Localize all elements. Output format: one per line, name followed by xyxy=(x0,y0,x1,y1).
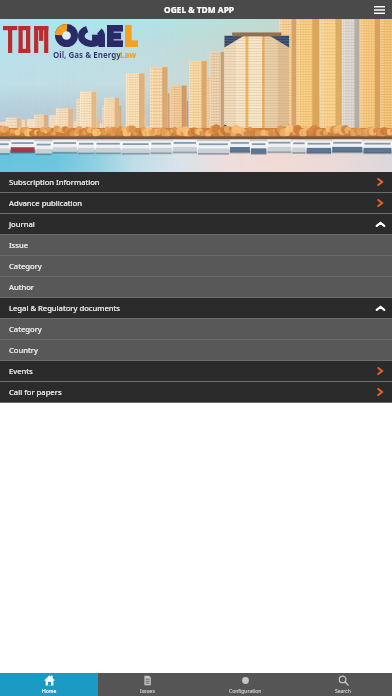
button[interactable]: Country xyxy=(0,340,392,360)
staticText: Oil, Gas & Energy xyxy=(53,49,121,60)
staticText: Law xyxy=(120,49,137,60)
button[interactable]: Legal & Regulatory documents xyxy=(0,298,392,318)
button[interactable]: Advance publication xyxy=(0,193,392,213)
staticText: Country xyxy=(9,345,38,355)
button[interactable]: Issues xyxy=(98,673,196,696)
staticText: OGEL & TDM APP xyxy=(164,4,235,15)
button[interactable]: Author xyxy=(0,277,392,297)
button[interactable]: Call for papers xyxy=(0,382,392,402)
staticText: Category xyxy=(9,261,42,271)
staticText: Advance publication xyxy=(9,198,82,208)
staticText: Journal xyxy=(9,219,35,229)
button[interactable]: Search xyxy=(294,673,392,696)
staticText: Call for papers xyxy=(9,387,62,397)
button[interactable]: Journal xyxy=(0,214,392,234)
button[interactable]: Menu xyxy=(372,2,387,17)
button[interactable]: Subscription Information xyxy=(0,172,392,192)
staticText: Search xyxy=(335,688,351,695)
staticText: Configuration xyxy=(229,688,262,695)
button[interactable]: Category xyxy=(0,256,392,276)
staticText: Home xyxy=(42,688,57,695)
staticText: Legal & Regulatory documents xyxy=(9,303,120,313)
staticText: Events xyxy=(9,366,33,376)
button[interactable]: Events xyxy=(0,361,392,381)
staticText: Issue xyxy=(9,240,29,250)
staticText: Subscription Information xyxy=(9,177,100,187)
button[interactable]: Configuration xyxy=(196,673,294,696)
staticText: Author xyxy=(9,282,35,292)
staticText: Category xyxy=(9,324,42,334)
button[interactable]: Home xyxy=(0,673,98,696)
button[interactable]: Issue xyxy=(0,235,392,255)
staticText: Issues xyxy=(140,688,155,695)
button[interactable]: Category xyxy=(0,319,392,339)
